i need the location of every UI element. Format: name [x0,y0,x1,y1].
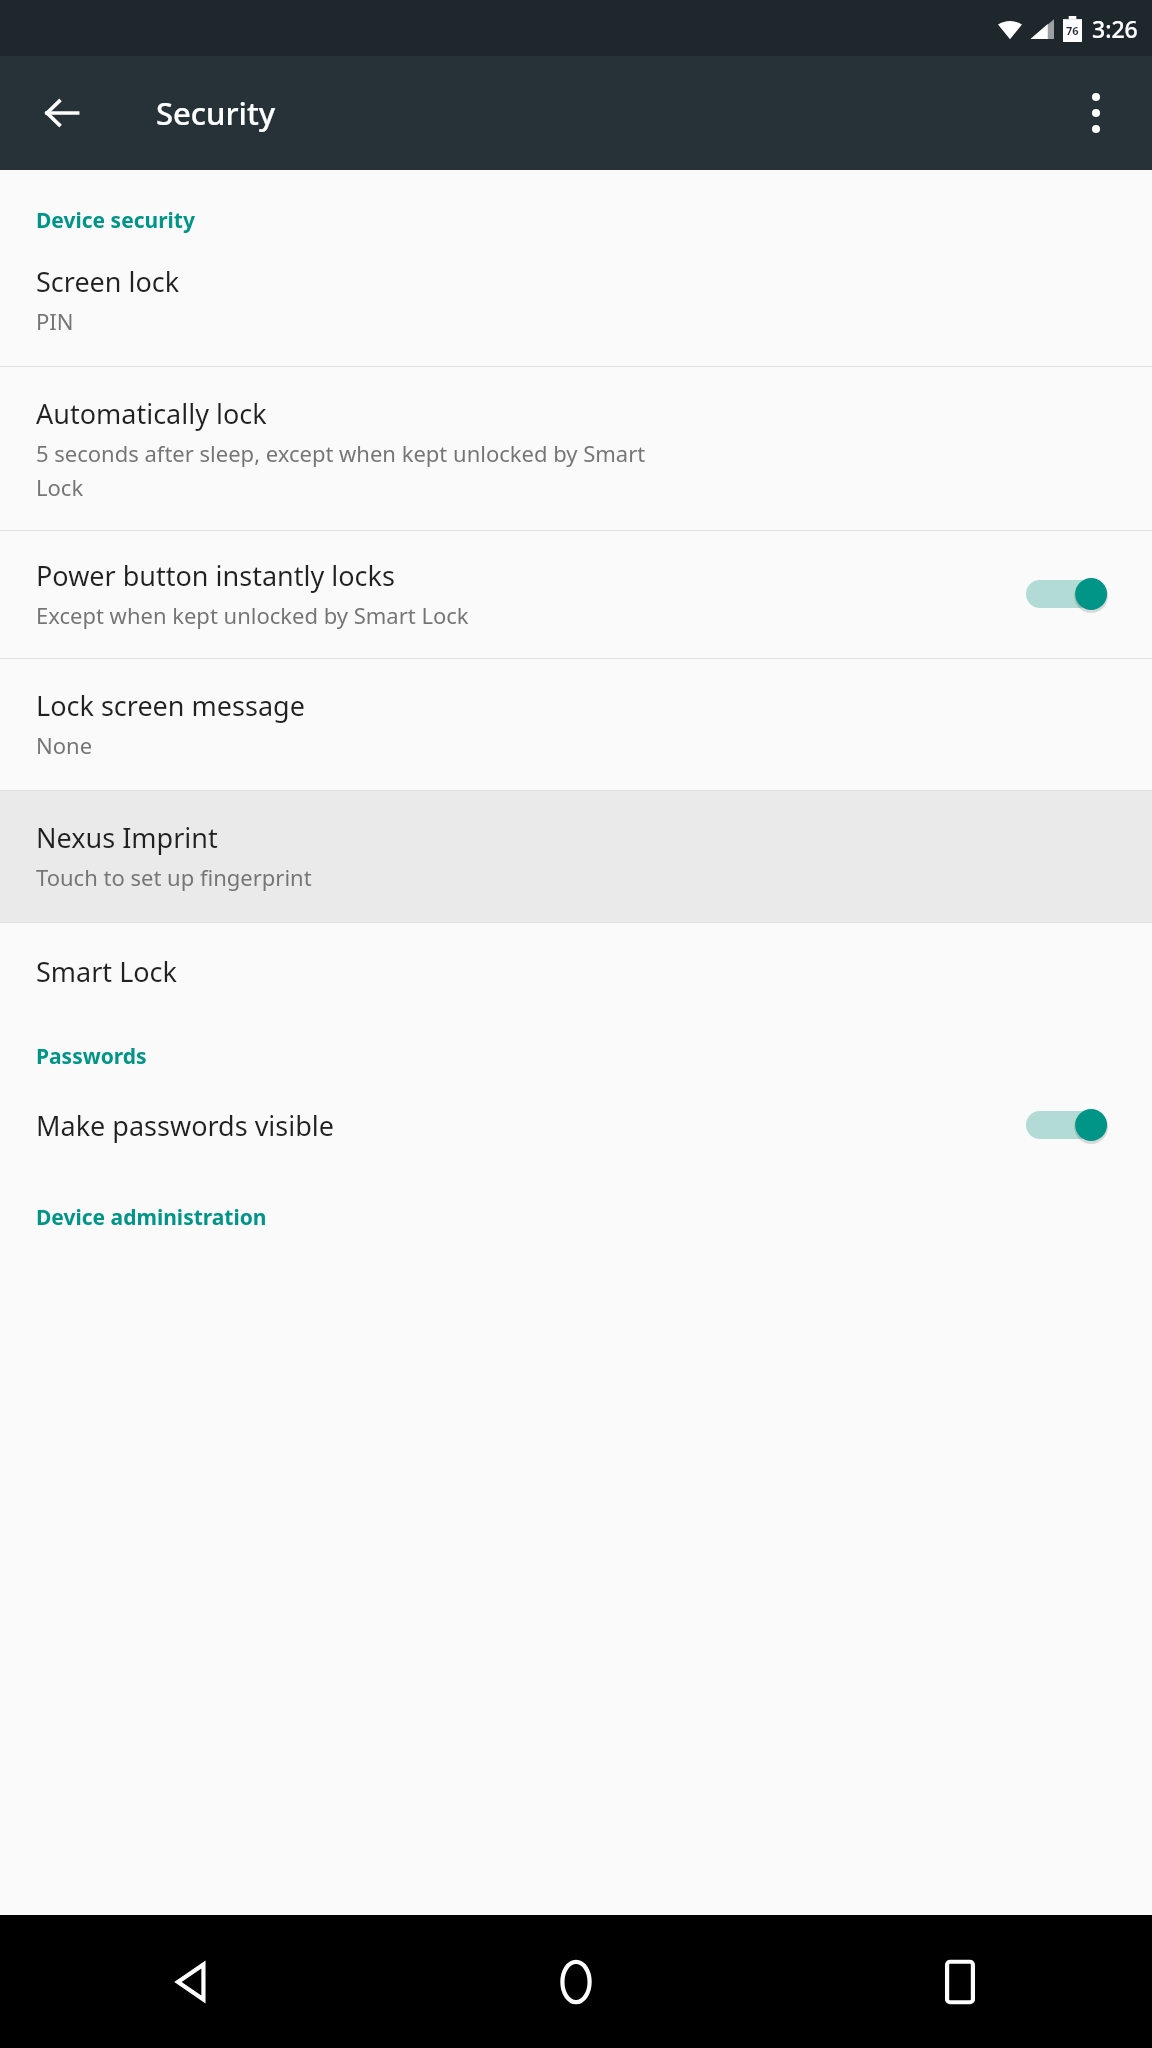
staticText: 76 [1066,23,1079,38]
button[interactable]: Automatically lock [0,367,1152,530]
staticText: Security [156,92,276,134]
button[interactable]: Lock screen message [0,659,1152,790]
staticText: 3:26 [1092,13,1138,44]
staticText: Smart Lock [36,953,177,990]
staticText: 5 seconds after sleep, except when kept … [36,438,646,502]
button[interactable]: Nexus Imprint [0,791,1152,922]
button[interactable] [1026,566,1122,622]
button[interactable]: Recent apps [768,1915,1152,2048]
staticText: PIN [36,306,74,336]
staticText: Lock screen message [36,687,305,724]
button[interactable]: Smart Lock [0,923,1152,1020]
staticText: Touch to set up fingerprint [36,862,312,892]
staticText: Device security [36,206,195,235]
staticText: Nexus Imprint [36,819,218,856]
button[interactable]: More options [1054,71,1138,155]
button[interactable]: Back [18,69,106,157]
staticText: Except when kept unlocked by Smart Lock [36,600,469,630]
staticText: Make passwords visible [36,1107,335,1144]
staticText: Screen lock [36,263,180,300]
button[interactable]: Back [0,1915,384,2048]
staticText: Power button instantly locks [36,557,395,594]
button[interactable]: Make passwords visible [0,1075,1152,1179]
button[interactable]: Power button instantly locks [0,531,1152,658]
staticText: Automatically lock [36,395,267,432]
button[interactable]: Home [384,1915,768,2048]
button[interactable]: Screen lock [0,239,1152,366]
button[interactable] [1026,1097,1122,1153]
staticText: Passwords [36,1042,147,1071]
staticText: Device administration [36,1203,267,1232]
staticText: None [36,730,93,760]
